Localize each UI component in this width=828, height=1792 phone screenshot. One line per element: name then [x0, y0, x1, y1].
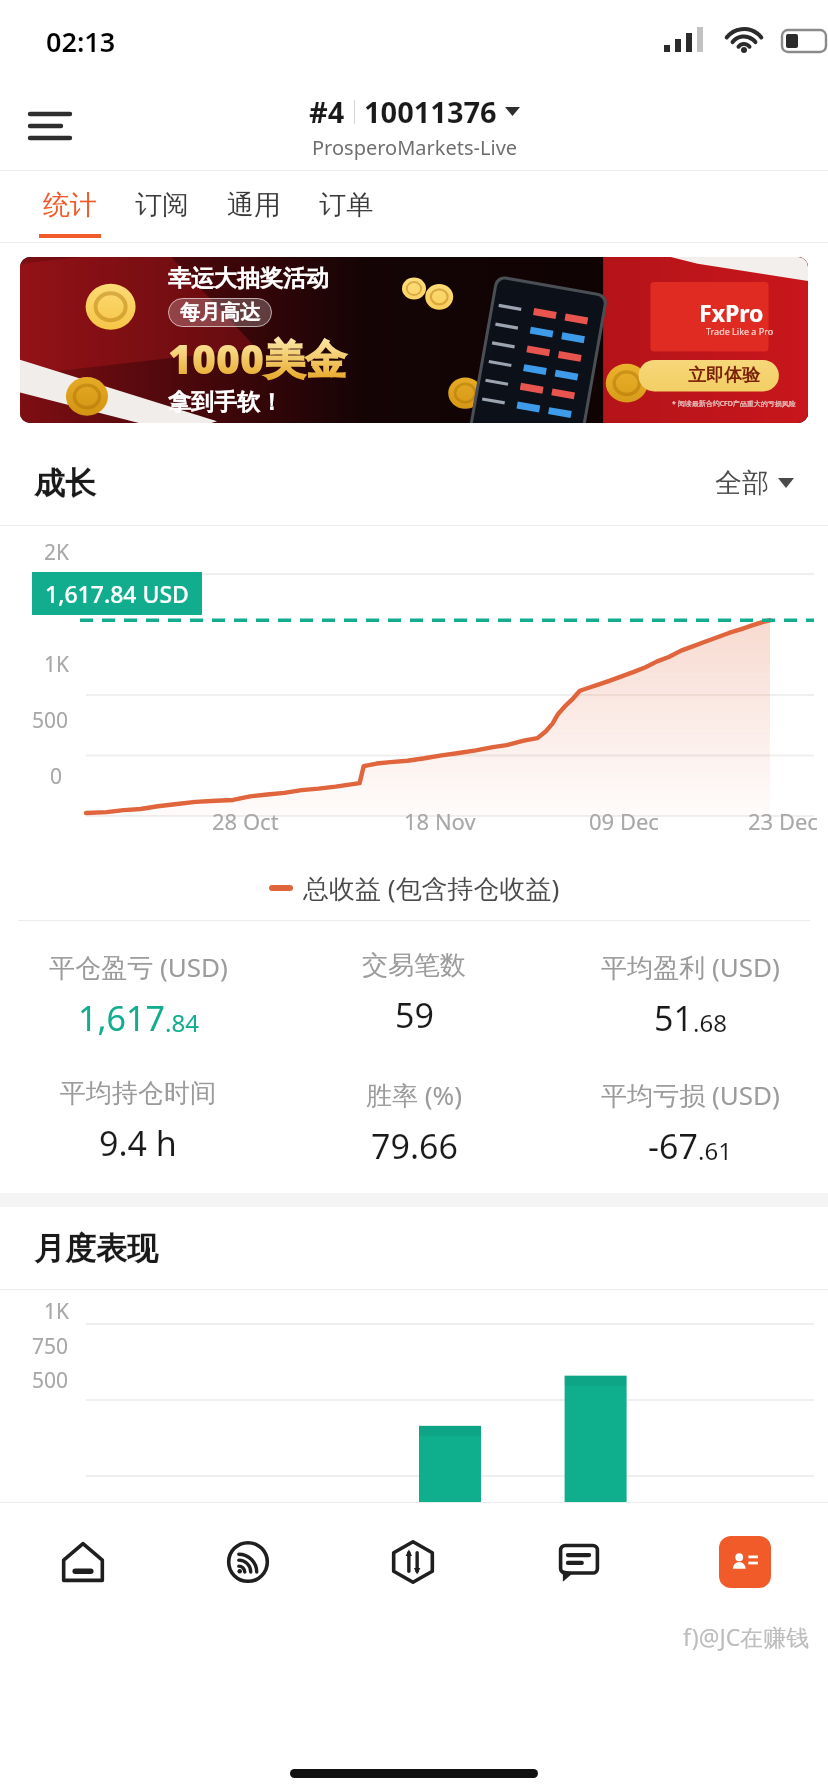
button[interactable]: #4: [309, 92, 520, 161]
staticText: 09 Dec: [589, 806, 659, 836]
staticText: 1,617: [78, 995, 165, 1041]
staticText: 统计: [43, 188, 97, 222]
staticText: 500: [32, 706, 69, 735]
staticText: 1,617.84 USD: [45, 578, 189, 609]
staticText: 18 Nov: [404, 806, 476, 836]
staticText: 02:13: [46, 23, 116, 60]
staticText: * 阅读最新合约CFD产品重大的亏损风险: [672, 399, 796, 409]
staticText: 51: [654, 995, 693, 1041]
staticText: 1K: [44, 650, 70, 679]
staticText: 平仓盈亏 (USD): [49, 949, 228, 985]
button[interactable]: 通用: [208, 171, 300, 243]
staticText: 交易笔数: [362, 949, 466, 982]
staticText: 9.4 h: [99, 1120, 177, 1166]
button[interactable]: Profile: [719, 1536, 771, 1588]
button[interactable]: Menu: [20, 96, 80, 156]
staticText: 胜率 (%): [366, 1077, 462, 1113]
button[interactable]: Trade: [330, 1503, 496, 1621]
staticText: 23 Dec: [748, 806, 818, 836]
staticText: .84: [165, 1006, 199, 1039]
staticText: 订单: [319, 188, 373, 222]
staticText: 月度表现: [34, 1229, 158, 1268]
staticText: .68: [693, 1006, 727, 1039]
staticText: 28 Oct: [212, 806, 279, 836]
staticText: 每月高达: [180, 300, 260, 325]
button[interactable]: 全部: [715, 466, 794, 500]
staticText: 平均盈利 (USD): [601, 949, 780, 985]
staticText: 2K: [44, 538, 70, 567]
button[interactable]: Chat: [496, 1503, 662, 1621]
staticText: .61: [698, 1134, 732, 1167]
staticText: ProsperoMarkets-Live: [312, 134, 518, 161]
staticText: FxPro: [699, 297, 764, 328]
button[interactable]: Promotion banner: [20, 257, 808, 423]
staticText: Trade Like a Pro: [706, 325, 774, 337]
staticText: 成长: [34, 464, 96, 503]
staticText: 1K: [44, 1297, 70, 1326]
staticText: 1000美金: [168, 330, 347, 386]
button[interactable]: Home: [0, 1503, 165, 1621]
staticText: 平均亏损 (USD): [601, 1077, 780, 1113]
staticText: 全部: [715, 466, 769, 500]
staticText: 总收益 (包含持仓收益): [303, 870, 560, 906]
staticText: 订阅: [135, 188, 189, 222]
staticText: 79.66: [371, 1123, 458, 1169]
button[interactable]: Signals: [165, 1503, 330, 1621]
staticText: 500: [32, 1366, 69, 1395]
staticText: 拿到手软！: [168, 388, 283, 417]
staticText: #4: [309, 92, 345, 131]
button[interactable]: 订阅: [116, 171, 208, 243]
staticText: 平均持仓时间: [60, 1077, 216, 1110]
staticText: 59: [395, 992, 434, 1038]
staticText: f)@JC在赚钱: [683, 1621, 810, 1652]
staticText: 通用: [227, 188, 281, 222]
staticText: 0: [50, 762, 63, 791]
staticText: 10011376: [364, 92, 497, 131]
staticText: 750: [32, 1332, 69, 1361]
button[interactable]: 订单: [300, 171, 392, 243]
staticText: 幸运大抽奖活动: [168, 264, 329, 293]
staticText: -67: [648, 1123, 698, 1169]
staticText: 立即体验: [688, 364, 760, 387]
button[interactable]: 统计: [24, 171, 116, 243]
